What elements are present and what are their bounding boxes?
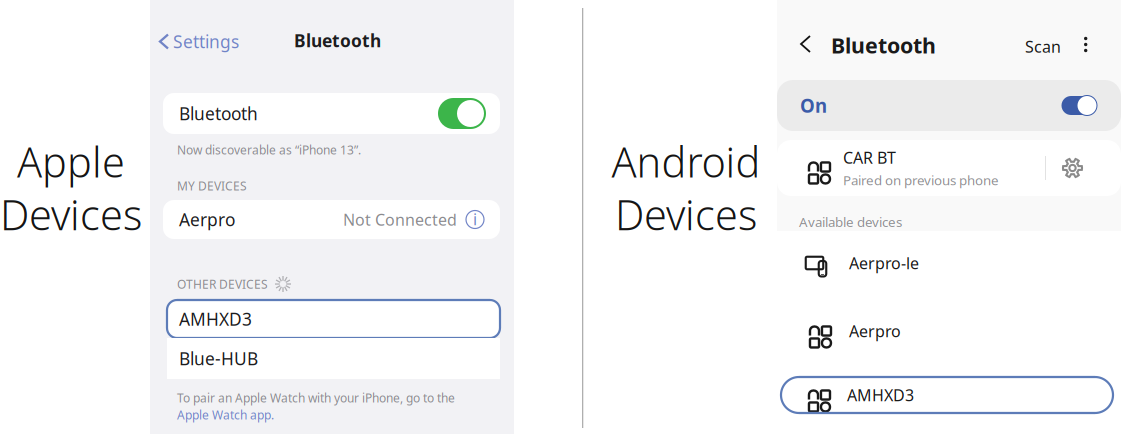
staticText: Aerpro-le (849, 252, 919, 274)
staticText: Blue-HUB (179, 347, 258, 370)
staticText: Scan (1025, 36, 1061, 57)
staticText: Apple (17, 134, 125, 189)
button[interactable]: Aerpro (163, 200, 500, 239)
button[interactable]: Aerpro (777, 316, 1121, 346)
staticText: Settings (173, 30, 239, 53)
staticText: To pair an Apple Watch with your iPhone,… (177, 390, 455, 406)
button[interactable]: On (777, 80, 1121, 131)
button[interactable]: Bluetooth (163, 93, 500, 134)
staticText: MY DEVICES (177, 178, 247, 194)
staticText: AMHXD3 (179, 307, 252, 330)
button[interactable]: Aerpro-le (777, 248, 1121, 278)
staticText: Now discoverable as “iPhone 13”. (177, 142, 361, 158)
staticText: Aerpro (179, 208, 235, 231)
staticText: Devices (0, 187, 142, 242)
staticText: AMHXD3 (847, 384, 914, 406)
button[interactable]: Back (795, 30, 816, 58)
staticText: CAR BT (843, 147, 896, 168)
button[interactable]: Scan (1021, 32, 1065, 61)
button[interactable]: Settings (157, 27, 242, 56)
button[interactable]: CAR BT (777, 140, 1121, 196)
staticText: OTHER DEVICES (177, 276, 268, 292)
staticText: Bluetooth (294, 29, 381, 52)
staticText: Not Connected (343, 209, 457, 230)
staticText: Available devices (799, 213, 902, 231)
staticText: Aerpro (849, 320, 901, 342)
staticText: Paired on previous phone (843, 171, 999, 189)
staticText: Android (611, 134, 760, 189)
button[interactable]: AMHXD3 (781, 377, 1113, 413)
button[interactable]: Blue-HUB (167, 338, 500, 379)
staticText: i (473, 208, 477, 230)
staticText: Devices (615, 187, 757, 242)
staticText: Bluetooth (831, 31, 936, 59)
staticText: On (800, 93, 827, 118)
staticText: Bluetooth (179, 102, 258, 125)
staticText: Apple Watch app. (177, 407, 274, 423)
button[interactable]: AMHXD3 (167, 300, 500, 338)
button[interactable]: More options (1078, 31, 1093, 58)
button[interactable]: Apple Watch app. (177, 407, 274, 423)
